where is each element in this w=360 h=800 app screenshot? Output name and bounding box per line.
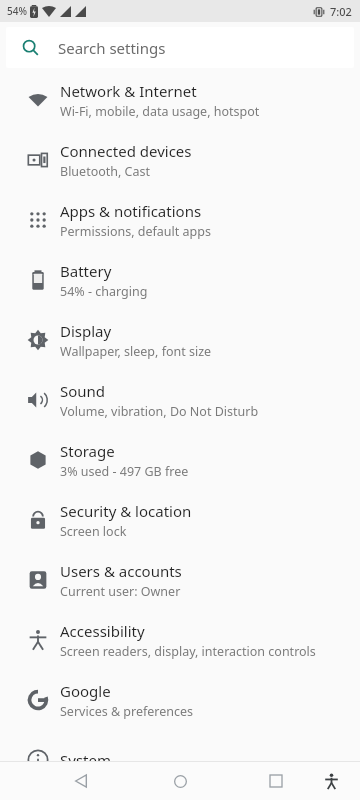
button[interactable]: Sound [0, 370, 360, 430]
staticText: Current user: Owner [60, 583, 181, 600]
button[interactable]: Users & accounts [0, 550, 360, 610]
staticText: Permissions, default apps [60, 223, 211, 240]
staticText: Services & preferences [60, 703, 194, 720]
button[interactable]: Accessibility menu [314, 764, 348, 798]
staticText: Battery [60, 261, 112, 281]
button[interactable]: Security & location [0, 490, 360, 550]
staticText: Search settings [58, 38, 166, 58]
button[interactable]: Display [0, 310, 360, 370]
staticText: Wallpaper, sleep, font size [60, 343, 212, 360]
staticText: Screen lock [60, 523, 127, 540]
button[interactable]: Back [63, 763, 99, 799]
staticText: Users & accounts [60, 561, 182, 581]
staticText: Accessibility [60, 621, 145, 641]
button[interactable]: Accessibility [0, 610, 360, 670]
button[interactable]: Google [0, 670, 360, 730]
staticText: Connected devices [60, 141, 192, 161]
staticText: Bluetooth, Cast [60, 163, 151, 180]
staticText: Wi-Fi, mobile, data usage, hotspot [60, 103, 260, 120]
staticText: 54% - charging [60, 283, 148, 300]
staticText: Storage [60, 441, 115, 461]
button[interactable]: Connected devices [0, 130, 360, 190]
button[interactable]: Storage [0, 430, 360, 490]
staticText: System [60, 750, 111, 770]
staticText: Screen readers, display, interaction con… [60, 643, 316, 660]
staticText: Apps & notifications [60, 201, 202, 221]
staticText: 54% [7, 4, 27, 18]
button[interactable]: Network & Internet [0, 70, 360, 130]
button[interactable]: Home [162, 763, 198, 799]
staticText: Sound [60, 381, 106, 401]
button[interactable]: System [0, 730, 360, 790]
button[interactable]: Search settings [6, 27, 354, 68]
staticText: 7:02 [330, 4, 352, 19]
button[interactable]: Battery [0, 250, 360, 310]
staticText: 3% used - 497 GB free [60, 463, 189, 480]
staticText: Display [60, 321, 112, 341]
staticText: Network & Internet [60, 81, 197, 101]
staticText: Google [60, 681, 111, 701]
button[interactable]: Recent apps [258, 763, 294, 799]
staticText: Security & location [60, 501, 192, 521]
button[interactable]: Apps & notifications [0, 190, 360, 250]
staticText: Volume, vibration, Do Not Disturb [60, 403, 259, 420]
